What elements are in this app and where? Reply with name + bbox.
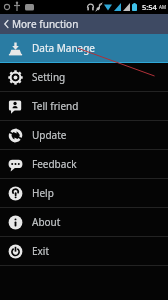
staticText: Feedback [32, 157, 77, 171]
button[interactable]: Data Manage [0, 34, 168, 62]
staticText: About [32, 215, 61, 229]
button[interactable]: Tell friend [0, 92, 168, 120]
staticText: Update [32, 128, 67, 142]
button[interactable]: Back [0, 14, 168, 34]
button[interactable]: Help [0, 179, 168, 207]
button[interactable]: Feedback [0, 150, 168, 178]
staticText: 5:54 [142, 2, 157, 12]
staticText: Help [32, 186, 54, 200]
staticText: AM [159, 4, 166, 10]
staticText: More function [12, 17, 79, 31]
button[interactable]: Exit [0, 237, 168, 265]
button[interactable]: About [0, 208, 168, 236]
staticText: Data Manage [32, 41, 95, 55]
button[interactable]: Setting [0, 63, 168, 91]
staticText: Tell friend [32, 99, 79, 113]
staticText: Exit [32, 244, 50, 258]
staticText: Setting [32, 70, 66, 84]
button[interactable]: Update [0, 121, 168, 149]
other: Back [3, 18, 11, 30]
